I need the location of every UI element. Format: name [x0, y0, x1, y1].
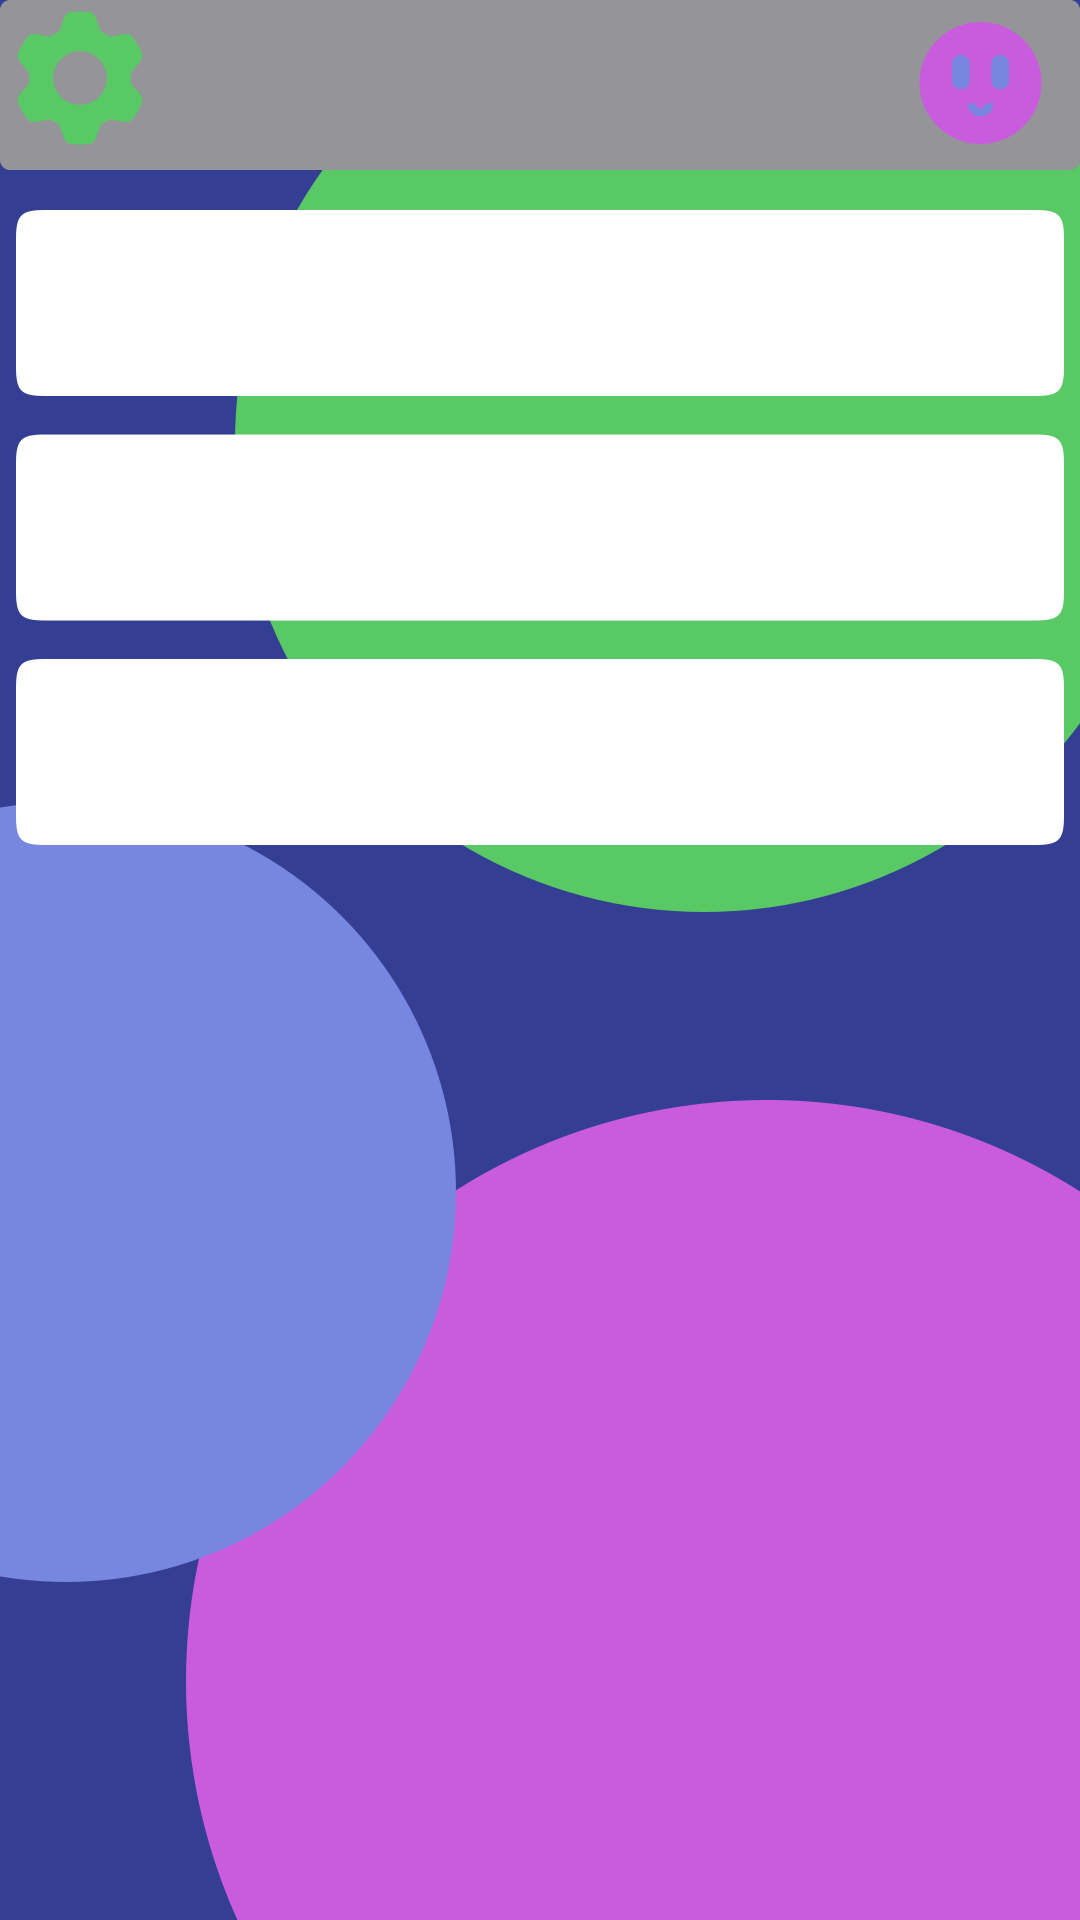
button[interactable]: Profile — [919, 22, 1041, 144]
button[interactable]: Settings — [13, 11, 147, 145]
button[interactable]: Third item — [16, 659, 1064, 845]
button[interactable]: Second item — [16, 434, 1064, 620]
button[interactable]: First item — [16, 210, 1064, 396]
